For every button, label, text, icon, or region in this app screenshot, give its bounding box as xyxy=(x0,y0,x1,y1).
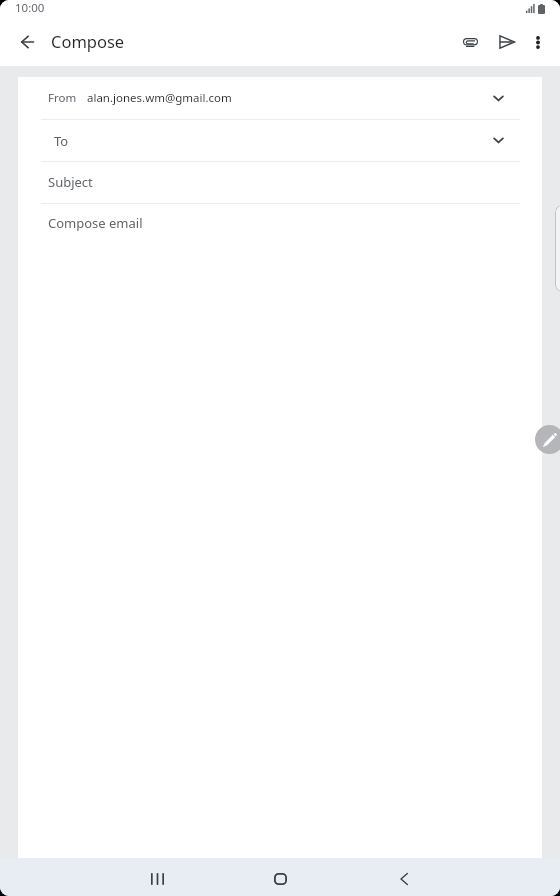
staticText: Compose xyxy=(51,30,125,52)
button[interactable]: Expand panel xyxy=(555,205,560,292)
button[interactable]: Subject xyxy=(18,162,542,203)
button[interactable]: More options xyxy=(521,25,555,59)
staticText: alan.jones.wm@gmail.com xyxy=(87,90,232,106)
button[interactable]: Back xyxy=(9,24,45,60)
button[interactable]: Home xyxy=(219,860,342,896)
button[interactable]: Send xyxy=(490,25,524,59)
staticText: To xyxy=(54,132,69,150)
button[interactable]: Attach file xyxy=(453,25,487,59)
button[interactable]: Compose email xyxy=(18,204,542,245)
button[interactable]: To xyxy=(18,120,542,161)
staticText: Subject xyxy=(48,173,93,191)
staticText: From xyxy=(48,90,77,106)
staticText: 10:00 xyxy=(15,0,45,16)
button[interactable]: Back xyxy=(342,860,465,896)
button[interactable]: Compose xyxy=(535,425,560,454)
button[interactable]: Recent apps xyxy=(96,860,219,896)
staticText: Compose email xyxy=(48,214,143,232)
button[interactable]: From xyxy=(18,77,542,119)
